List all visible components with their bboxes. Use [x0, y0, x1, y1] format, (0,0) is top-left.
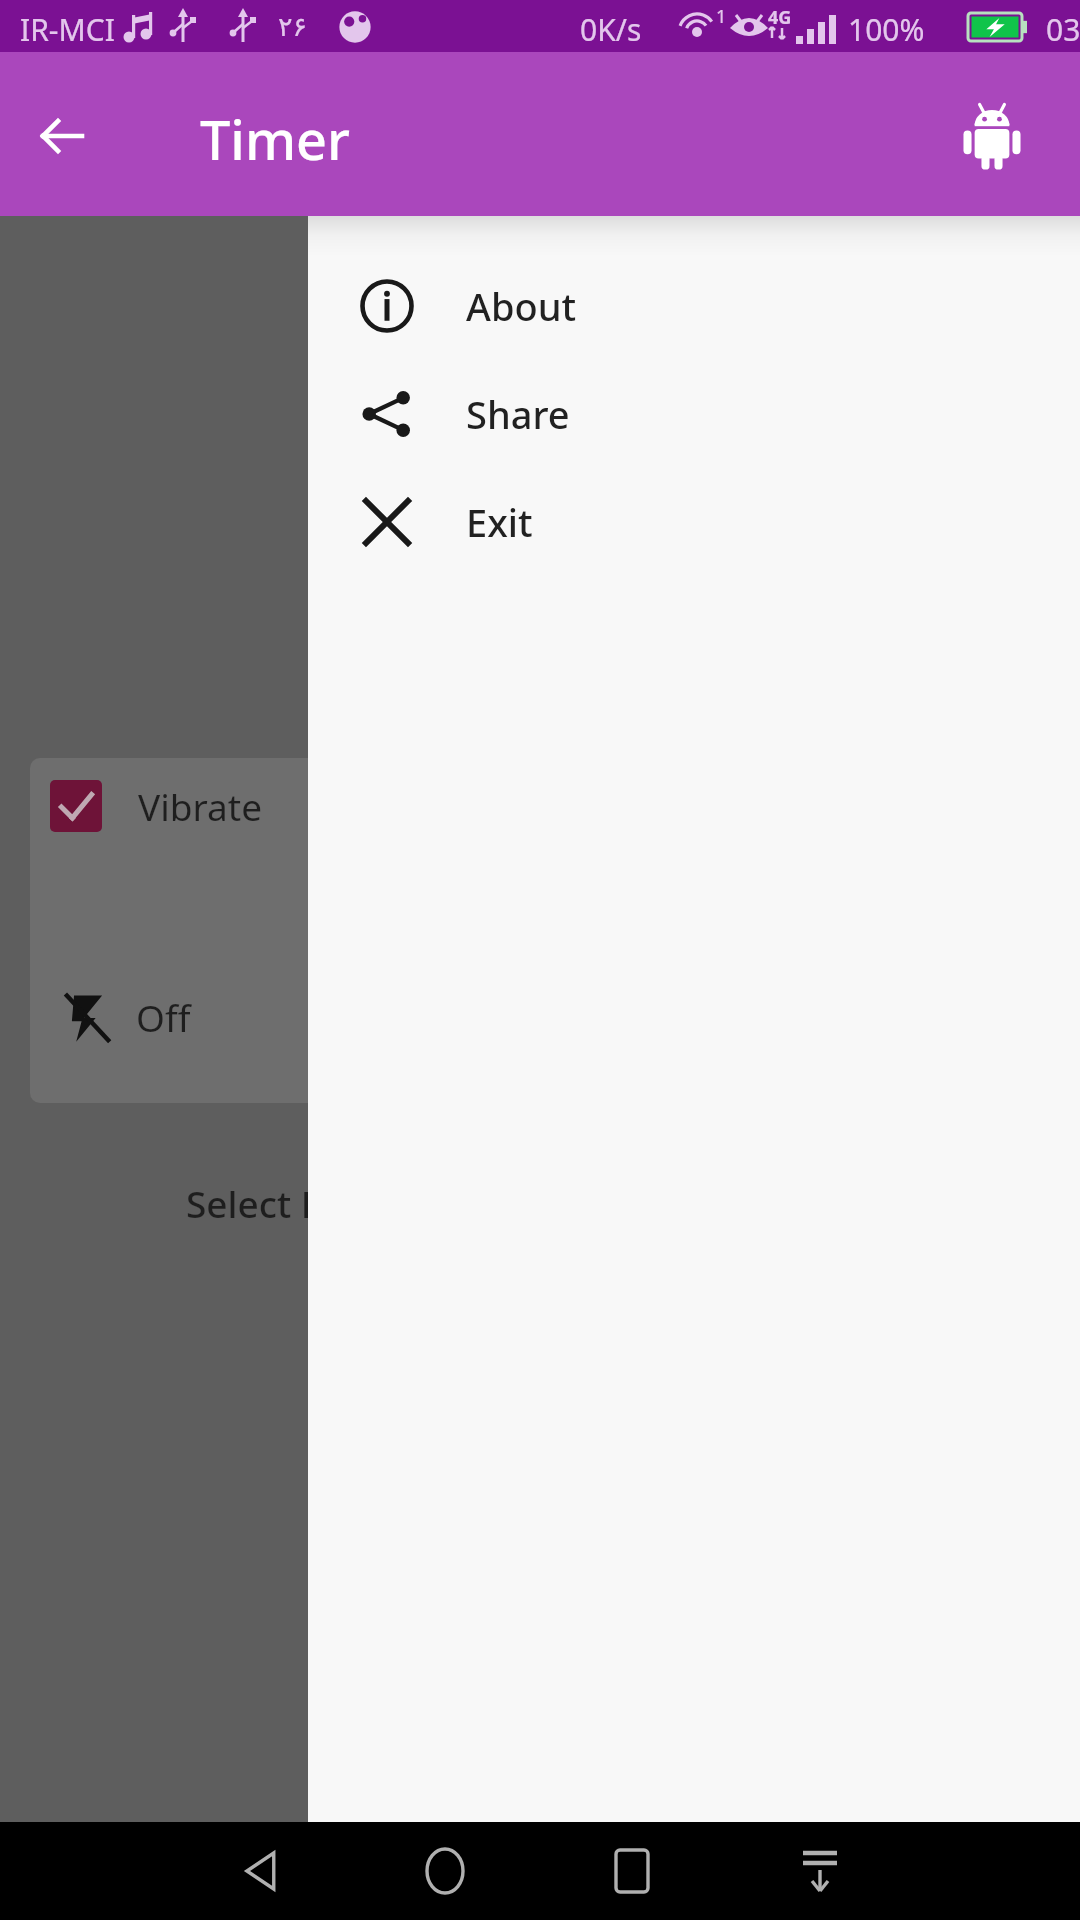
button[interactable]: Back — [24, 98, 100, 174]
staticText: Vibrate — [138, 781, 263, 831]
staticText: Timer — [200, 102, 350, 176]
staticText: 03:47 — [1046, 9, 1080, 50]
staticText: 4G — [768, 5, 792, 30]
staticText: 1 — [716, 4, 727, 29]
staticText: About — [466, 280, 577, 332]
button[interactable]: Home — [385, 1836, 505, 1906]
staticText: Exit — [466, 496, 533, 548]
staticText: Share — [466, 388, 570, 440]
button[interactable]: Android — [944, 88, 1040, 184]
button[interactable]: Recents — [572, 1836, 692, 1906]
staticText: ۲۶ — [278, 11, 308, 42]
staticText: 0K/s — [580, 9, 642, 50]
staticText: 100% — [848, 9, 925, 50]
button[interactable]: Exit — [308, 468, 1080, 576]
button[interactable]: Share — [308, 360, 1080, 468]
button[interactable]: Back — [202, 1836, 322, 1906]
staticText: Off — [136, 992, 191, 1042]
staticText: Select Duration — [186, 1178, 458, 1228]
button[interactable]: Hide keyboard — [760, 1836, 880, 1906]
button[interactable]: About — [308, 252, 1080, 360]
staticText: IR-MCI — [20, 9, 115, 50]
